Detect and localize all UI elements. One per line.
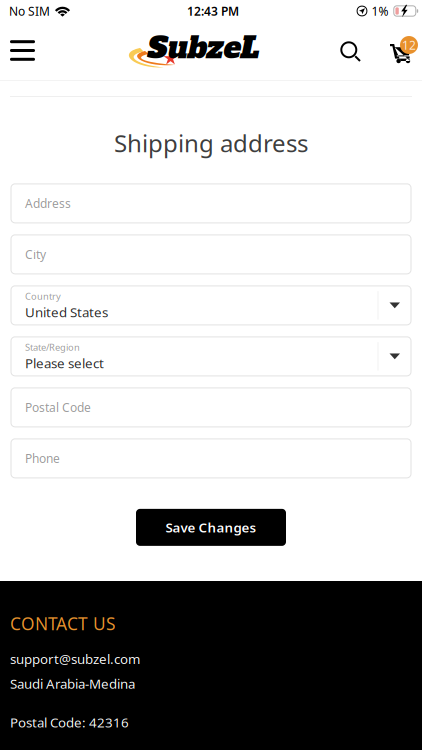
staticText: Please select <box>25 354 104 372</box>
staticText: Save Changes <box>165 518 256 536</box>
staticText: Phone <box>25 450 60 466</box>
button[interactable]: State/Region <box>11 337 411 376</box>
button[interactable]: Cart, 12 items <box>377 22 422 80</box>
button[interactable]: Search <box>332 22 377 80</box>
staticText: support@subzel.com <box>10 650 140 668</box>
staticText: No SIM <box>9 3 50 19</box>
staticText: United States <box>25 303 108 321</box>
button[interactable]: Save Changes <box>136 509 286 546</box>
staticText: Postal Code <box>25 399 91 415</box>
button[interactable]: Address <box>11 184 411 223</box>
staticText: Saudi Arabia-Medina <box>10 675 135 692</box>
staticText: 12:43 PM <box>187 3 239 19</box>
staticText: 1% <box>372 3 389 19</box>
staticText: Country <box>25 290 61 302</box>
button[interactable]: City <box>11 235 411 274</box>
button[interactable]: Phone <box>11 439 411 478</box>
staticText: Address <box>25 195 71 211</box>
staticText: CONTACT US <box>10 612 116 635</box>
staticText: Shipping address <box>114 127 308 159</box>
button[interactable]: Country <box>11 286 411 325</box>
button[interactable]: Postal Code <box>11 388 411 427</box>
staticText: City <box>25 246 46 262</box>
staticText: Postal Code: 42316 <box>10 713 129 731</box>
staticText: SubzeL <box>146 28 258 68</box>
button[interactable]: Menu <box>0 22 47 80</box>
staticText: State/Region <box>25 341 80 353</box>
staticText: 12 <box>402 37 416 53</box>
